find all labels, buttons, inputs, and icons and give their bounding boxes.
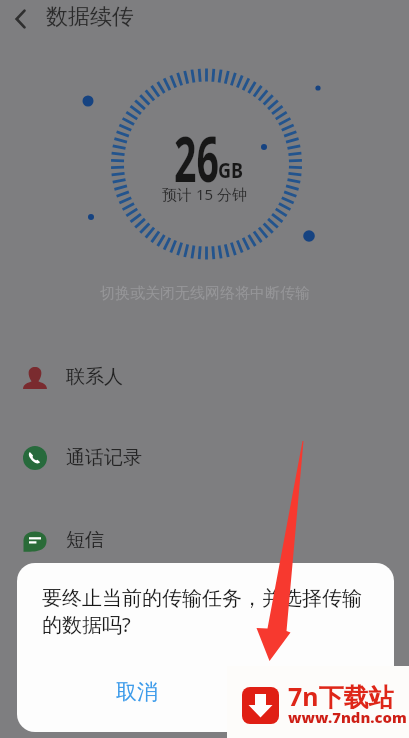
- staticText: 数据续传: [46, 3, 134, 31]
- staticText: 切换或关闭无线网络将中断传输: [100, 284, 310, 303]
- staticText: 26: [174, 116, 219, 200]
- button[interactable]: 短信: [0, 499, 409, 580]
- staticText: 联系人: [66, 365, 123, 389]
- staticText: 通话记录: [66, 446, 142, 470]
- staticText: 预计 15 分钟: [162, 184, 247, 204]
- button[interactable]: 取消: [87, 669, 187, 715]
- button[interactable]: 联系人: [0, 336, 409, 417]
- staticText: www.7ndn.com: [288, 708, 408, 727]
- staticText: 取消: [116, 679, 158, 705]
- button[interactable]: Back: [4, 2, 38, 36]
- button[interactable]: 通话记录: [0, 417, 409, 498]
- staticText: 要终止当前的传输任务，并选择传输的数据吗?: [42, 586, 380, 638]
- staticText: 短信: [66, 528, 104, 552]
- staticText: GB: [218, 154, 243, 184]
- staticText: 7n下载站: [288, 679, 394, 713]
